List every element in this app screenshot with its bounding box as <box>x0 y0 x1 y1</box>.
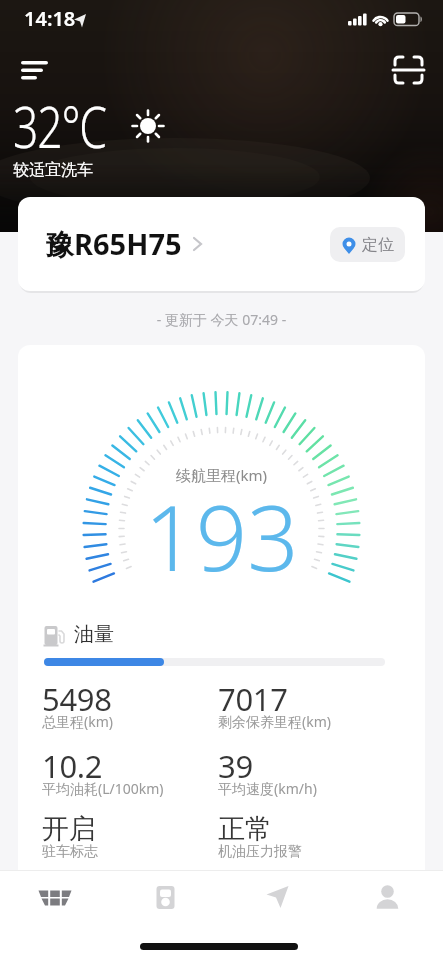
staticText: 平均速度(km/h) <box>218 779 317 798</box>
staticText: 5498 <box>42 678 112 720</box>
button[interactable] <box>332 870 443 926</box>
button[interactable]: 豫R65H75 <box>18 197 425 291</box>
staticText: 剩余保养里程(km) <box>218 712 331 731</box>
staticText: 总里程(km) <box>42 712 113 731</box>
staticText: 定位 <box>362 235 394 255</box>
staticText: 机油压力报警 <box>218 843 302 861</box>
button[interactable] <box>388 50 430 90</box>
staticText: 续航里程(km) <box>18 465 425 485</box>
staticText: 193 <box>18 475 425 598</box>
button[interactable] <box>221 870 332 926</box>
staticText: 39 <box>218 745 253 787</box>
button[interactable] <box>0 870 110 926</box>
button[interactable] <box>12 52 56 88</box>
staticText: 14:18 <box>24 5 76 32</box>
staticText: 豫R65H75 <box>45 224 182 264</box>
staticText: 7017 <box>218 678 288 720</box>
staticText: 正常 <box>218 812 272 846</box>
button[interactable] <box>110 870 221 926</box>
staticText: 较适宜洗车 <box>13 160 93 180</box>
staticText: 油量 <box>74 622 114 647</box>
staticText: 开启 <box>42 812 96 846</box>
button[interactable]: 定位 <box>330 227 405 262</box>
staticText: - 更新于 今天 07:49 - <box>0 310 443 329</box>
staticText: 驻车标志 <box>42 843 98 861</box>
staticText: 32°C <box>13 87 107 165</box>
staticText: 平均油耗(L/100km) <box>42 779 164 798</box>
staticText: 10.2 <box>42 745 103 787</box>
